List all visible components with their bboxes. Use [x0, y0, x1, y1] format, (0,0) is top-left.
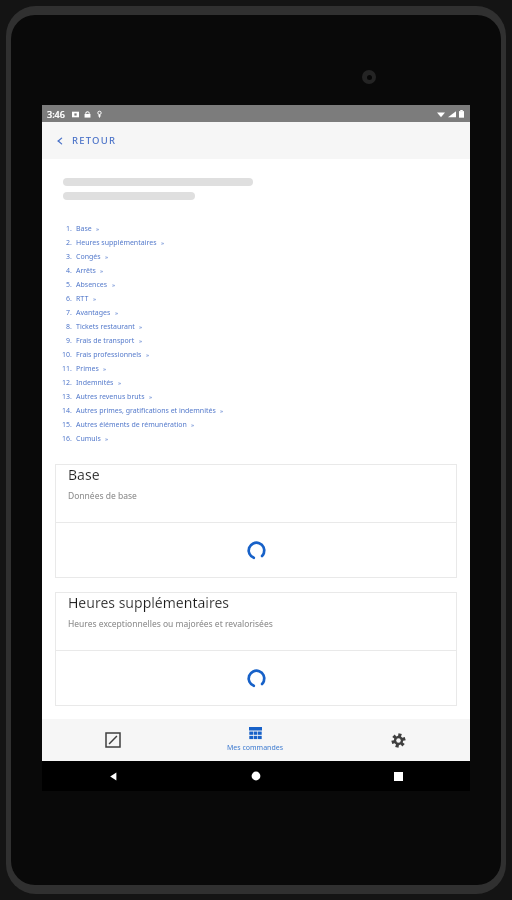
button[interactable]: RETOUR: [50, 129, 123, 152]
staticText: 8.: [66, 322, 72, 332]
staticText: Primes: [76, 364, 99, 374]
staticText: Frais de transport: [76, 336, 135, 346]
button[interactable]: 16.: [55, 434, 109, 444]
button[interactable]: Heures supplémentaires: [55, 592, 457, 706]
staticText: »: [105, 435, 109, 443]
staticText: Autres primes, gratifications et indemni…: [76, 406, 216, 416]
staticText: »: [100, 267, 104, 275]
staticText: Avantages: [76, 308, 111, 318]
staticText: 1.: [66, 224, 72, 234]
staticText: Base: [76, 224, 92, 234]
staticText: »: [103, 365, 107, 373]
staticText: 6.: [66, 294, 72, 304]
button[interactable]: Paramètres: [327, 719, 470, 761]
staticText: »: [146, 351, 150, 359]
staticText: Cumuls: [76, 434, 101, 444]
button[interactable]: 8.: [55, 322, 143, 332]
staticText: 13.: [62, 392, 72, 402]
button[interactable]: 11.: [55, 364, 107, 374]
staticText: Absences: [76, 280, 108, 290]
staticText: Congés: [76, 252, 101, 262]
staticText: RTT: [76, 294, 89, 304]
button[interactable]: 7.: [55, 308, 119, 318]
staticText: Indemnités: [76, 378, 114, 388]
staticText: »: [96, 225, 100, 233]
staticText: »: [93, 295, 97, 303]
staticText: Frais professionnels: [76, 350, 142, 360]
staticText: Mes commandes: [227, 743, 284, 753]
staticText: 7.: [66, 308, 72, 318]
staticText: »: [112, 281, 116, 289]
button[interactable]: 3.: [55, 252, 109, 262]
staticText: 12.: [62, 378, 72, 388]
staticText: 5.: [66, 280, 72, 290]
button[interactable]: 10.: [55, 350, 150, 360]
staticText: 4.: [66, 266, 72, 276]
staticText: Heures exceptionnelles ou majorées et re…: [68, 618, 273, 630]
staticText: 9.: [66, 336, 72, 346]
staticText: Autres revenus bruts: [76, 392, 145, 402]
button[interactable]: 13.: [55, 392, 153, 402]
staticText: Données de base: [68, 490, 137, 502]
button[interactable]: 4.: [55, 266, 104, 276]
button[interactable]: 2.: [55, 238, 165, 248]
staticText: Heures supplémentaires: [68, 593, 230, 612]
button[interactable]: Mes commandes: [184, 719, 327, 761]
staticText: »: [161, 239, 165, 247]
staticText: »: [118, 379, 122, 387]
staticText: Arrêts: [76, 266, 96, 276]
staticText: »: [191, 421, 195, 429]
staticText: 2.: [66, 238, 72, 248]
staticText: Base: [68, 465, 100, 484]
button[interactable]: 9.: [55, 336, 143, 346]
staticText: 11.: [62, 364, 72, 374]
staticText: 15.: [62, 420, 72, 430]
staticText: 16.: [62, 434, 72, 444]
staticText: Tickets restaurant: [76, 322, 135, 332]
staticText: »: [139, 337, 143, 345]
staticText: 14.: [62, 406, 72, 416]
staticText: 3:46: [47, 108, 65, 120]
button[interactable]: Base: [55, 464, 457, 578]
button[interactable]: 15.: [55, 420, 195, 430]
button[interactable]: 12.: [55, 378, 122, 388]
staticText: Heures supplémentaires: [76, 238, 157, 248]
button[interactable]: 14.: [55, 406, 224, 416]
staticText: »: [220, 407, 224, 415]
button[interactable]: 1.: [55, 224, 100, 234]
staticText: »: [149, 393, 153, 401]
staticText: 3.: [66, 252, 72, 262]
staticText: »: [105, 253, 109, 261]
staticText: RETOUR: [72, 134, 117, 147]
staticText: 10.: [62, 350, 72, 360]
staticText: Autres éléments de rémunération: [76, 420, 187, 430]
staticText: »: [115, 309, 119, 317]
button[interactable]: Saisie: [42, 719, 184, 761]
staticText: »: [139, 323, 143, 331]
button[interactable]: 5.: [55, 280, 116, 290]
button[interactable]: 6.: [55, 294, 97, 304]
